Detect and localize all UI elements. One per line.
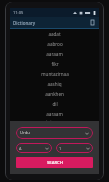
button[interactable]: Urdu: [16, 127, 93, 139]
button[interactable]: aabroo: [10, 39, 99, 49]
button[interactable]: A: [16, 143, 52, 153]
staticText: SEARCH: [47, 160, 63, 166]
button[interactable]: muntazirnaa: [10, 69, 99, 79]
button[interactable]: aaraam: [10, 109, 99, 119]
staticText: aadat: [48, 31, 61, 37]
staticText: fikr: [51, 61, 59, 67]
staticText: aabroo: [47, 41, 63, 47]
staticText: 11:05: [13, 10, 24, 15]
staticText: A: [19, 146, 22, 151]
button[interactable]: 1: [56, 143, 93, 153]
staticText: Urdu: [20, 130, 30, 136]
staticText: Dictionary: [13, 20, 36, 26]
button[interactable]: SEARCH: [16, 157, 93, 168]
button[interactable]: aankhen: [10, 89, 99, 99]
staticText: aaraam: [46, 51, 63, 57]
button[interactable]: aadat: [10, 29, 99, 39]
staticText: intezaar: [46, 119, 64, 121]
staticText: aaraam: [46, 111, 63, 117]
button[interactable]: More options: [88, 18, 97, 27]
staticText: 1: [59, 146, 62, 151]
button[interactable]: aashiq: [10, 79, 99, 89]
button[interactable]: aaraam: [10, 49, 99, 59]
button[interactable]: dil: [10, 99, 99, 109]
button[interactable]: fikr: [10, 59, 99, 69]
staticText: muntazirnaa: [41, 71, 69, 77]
staticText: aashiq: [47, 81, 62, 87]
staticText: dil: [52, 101, 58, 107]
staticText: aankhen: [45, 91, 64, 97]
